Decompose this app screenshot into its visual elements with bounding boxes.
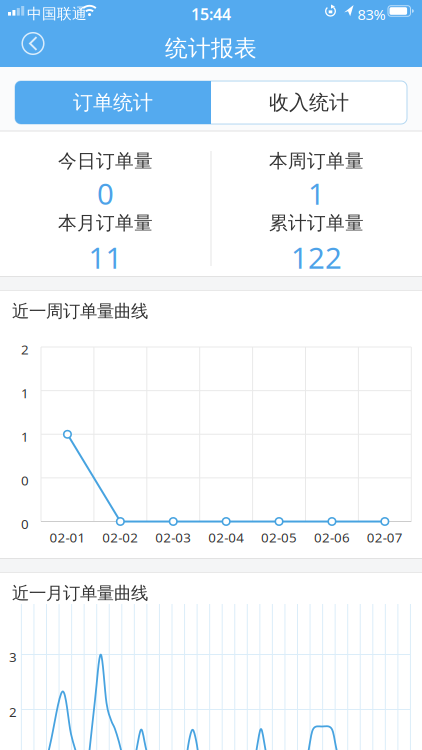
button[interactable]: Back bbox=[19, 29, 47, 57]
staticText: 11 bbox=[88, 238, 122, 277]
button[interactable]: 订单统计 bbox=[15, 81, 211, 124]
staticText: 1 bbox=[308, 174, 325, 213]
staticText: 3 bbox=[9, 648, 17, 666]
staticText: 统计报表 bbox=[165, 34, 257, 62]
staticText: 今日订单量 bbox=[58, 149, 153, 172]
staticText: 83% bbox=[357, 5, 385, 24]
staticText: 订单统计 bbox=[73, 90, 153, 115]
staticText: 累计订单量 bbox=[269, 211, 364, 234]
staticText: 1 bbox=[21, 428, 29, 445]
staticText: 本月订单量 bbox=[58, 211, 153, 234]
staticText: 02-06 bbox=[314, 528, 350, 546]
staticText: 0 bbox=[21, 471, 29, 489]
staticText: 02-01 bbox=[49, 528, 85, 546]
staticText: 近一月订单量曲线 bbox=[12, 582, 148, 604]
staticText: 2 bbox=[21, 340, 29, 358]
staticText: 0 bbox=[97, 174, 114, 213]
staticText: 02-07 bbox=[367, 528, 403, 546]
staticText: 收入统计 bbox=[269, 90, 349, 115]
staticText: 122 bbox=[291, 238, 342, 277]
staticText: 02-05 bbox=[261, 528, 297, 546]
staticText: 15:44 bbox=[191, 3, 231, 25]
button[interactable]: 收入统计 bbox=[15, 81, 407, 124]
staticText: 1 bbox=[21, 384, 29, 402]
staticText: 中国联通 bbox=[27, 5, 87, 23]
staticText: 02-04 bbox=[208, 528, 244, 546]
staticText: 2 bbox=[9, 703, 17, 721]
staticText: 近一周订单量曲线 bbox=[12, 300, 148, 322]
staticText: 0 bbox=[21, 515, 29, 533]
staticText: 02-03 bbox=[155, 528, 191, 546]
staticText: 本周订单量 bbox=[269, 149, 364, 172]
staticText: 02-02 bbox=[102, 528, 138, 546]
